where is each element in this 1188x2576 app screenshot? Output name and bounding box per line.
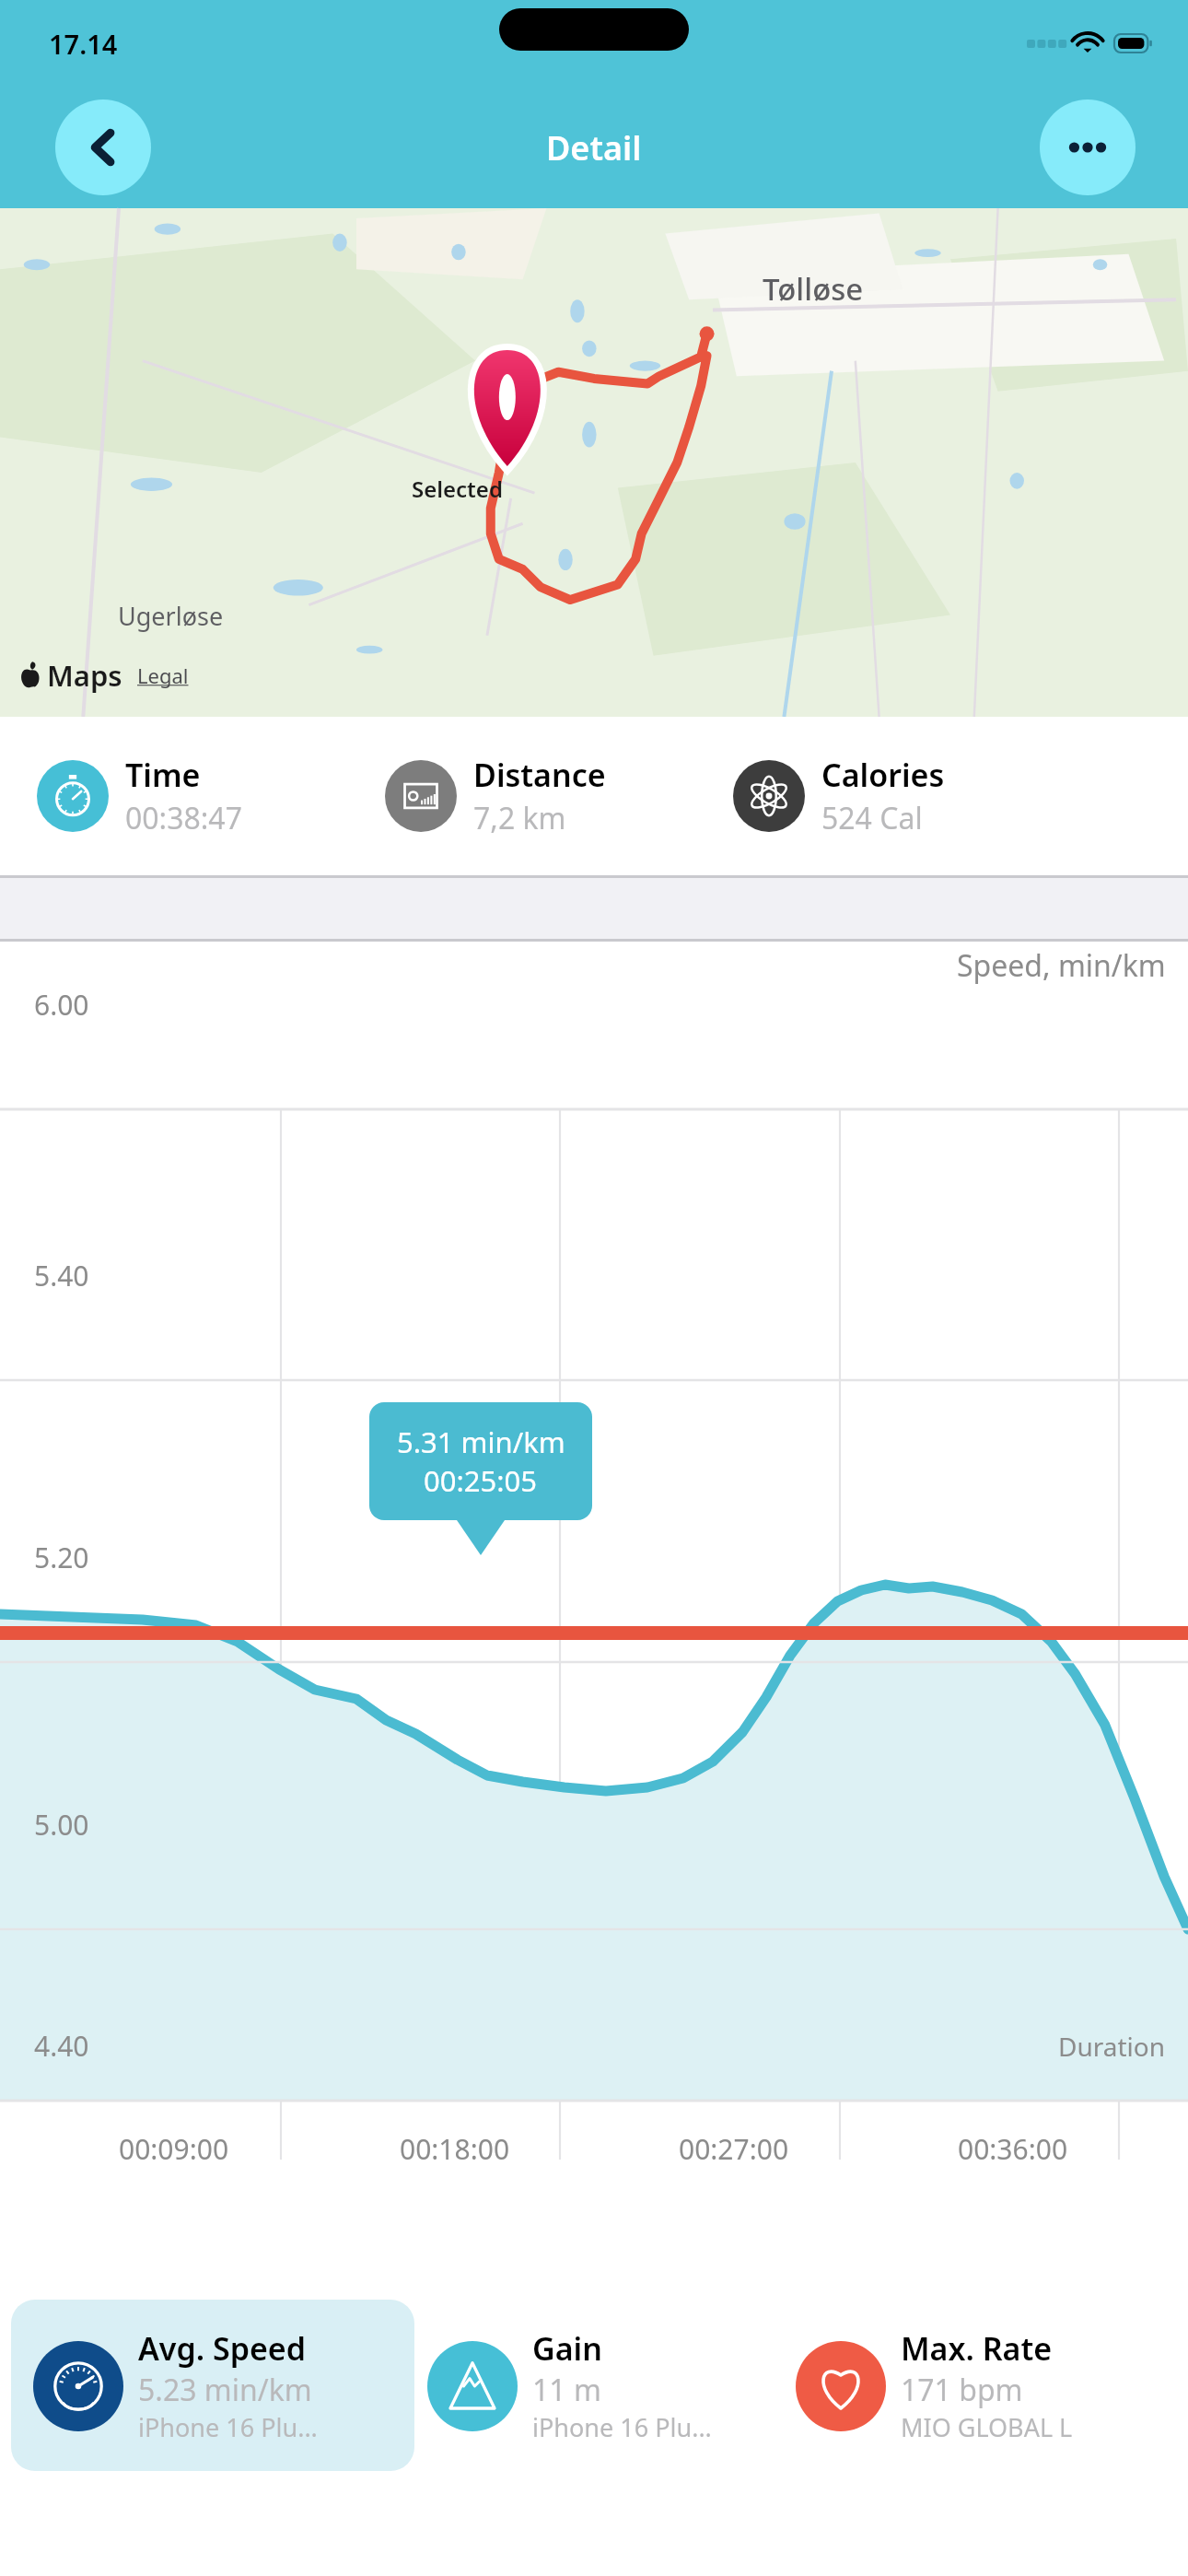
staticText: Selected (412, 474, 503, 504)
staticText: 171 bpm (901, 2370, 1023, 2410)
button[interactable]: Avg. Speed (11, 2300, 414, 2471)
staticText: Speed, min/km (957, 945, 1166, 986)
staticText: 6.00 (34, 986, 89, 1024)
staticText: iPhone 16 Plu... (138, 2410, 318, 2444)
staticText: 17.14 (49, 26, 118, 62)
button[interactable]: Gain (414, 2300, 783, 2471)
button[interactable]: Time (37, 754, 385, 838)
button[interactable]: Back (55, 100, 151, 195)
button[interactable]: Calories (733, 754, 1188, 838)
staticText: Max. Rate (901, 2327, 1053, 2370)
staticText: Duration (1058, 2029, 1166, 2064)
staticText: iPhone 16 Plu... (532, 2410, 712, 2444)
staticText: Detail (546, 125, 642, 170)
staticText: Calories (821, 754, 945, 796)
staticText: Gain (532, 2327, 602, 2370)
staticText: 00:38:47 (125, 798, 242, 838)
staticText: 00:09:00 (119, 2130, 229, 2168)
staticText: 00:18:00 (400, 2130, 510, 2168)
button[interactable]: Legal (137, 662, 189, 689)
staticText: Ugerløse (118, 599, 224, 633)
staticText: 5.31 min/km (397, 1423, 565, 1461)
staticText: 5.40 (34, 1257, 89, 1294)
staticText: Time (125, 754, 201, 796)
staticText: 5.00 (34, 1806, 89, 1844)
staticText: 524 Cal (821, 798, 923, 838)
staticText: 00:27:00 (679, 2130, 789, 2168)
staticText: 7,2 km (473, 798, 566, 838)
staticText: MIO GLOBAL L (901, 2410, 1073, 2444)
staticText: Avg. Speed (138, 2327, 307, 2370)
staticText: 00:25:05 (424, 1461, 538, 1500)
staticText: Tølløse (763, 268, 864, 310)
staticText: 5.20 (34, 1539, 89, 1576)
staticText: 4.40 (34, 2027, 89, 2065)
staticText: Maps (47, 656, 122, 695)
staticText: 5.23 min/km (138, 2370, 312, 2410)
button[interactable]: More options (1040, 100, 1136, 195)
staticText: 00:36:00 (958, 2130, 1068, 2168)
staticText: 11 m (532, 2370, 601, 2410)
button[interactable]: Distance (385, 754, 733, 838)
staticText: Distance (473, 754, 606, 796)
button[interactable]: Max. Rate (783, 2300, 1188, 2471)
